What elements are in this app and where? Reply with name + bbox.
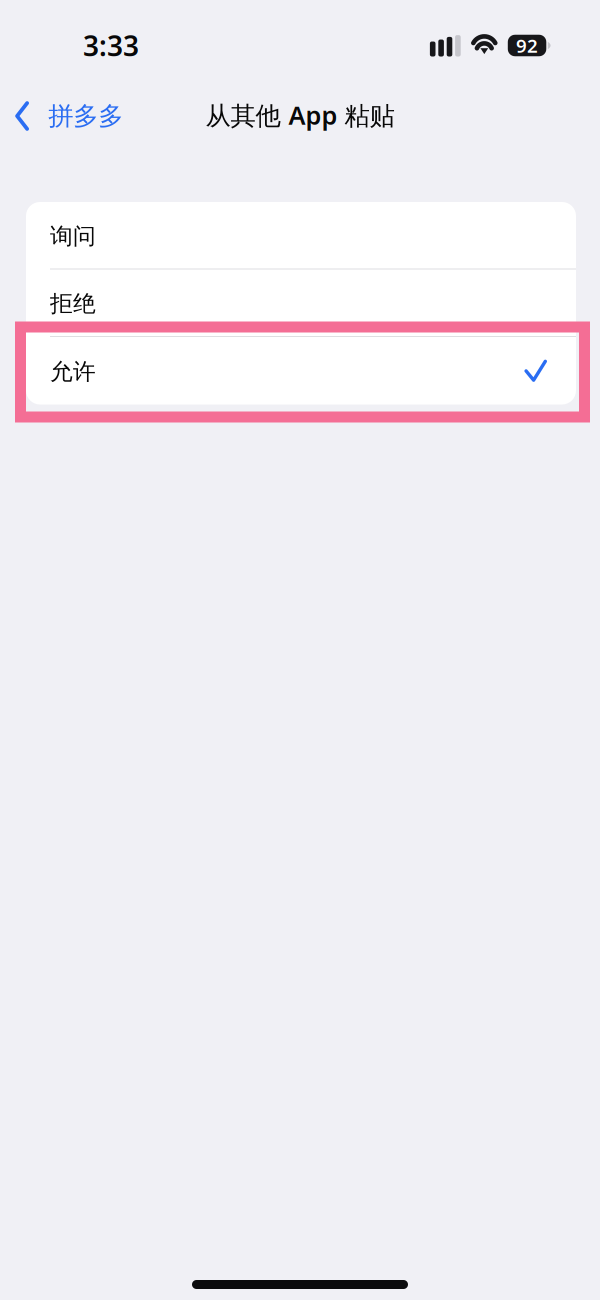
staticText: 拒绝 xyxy=(50,290,96,318)
staticText: 92 xyxy=(516,33,538,58)
button[interactable]: 拒绝 xyxy=(26,269,576,337)
button[interactable]: 拼多多 xyxy=(0,91,137,140)
staticText: 询问 xyxy=(50,222,96,250)
staticText: 允许 xyxy=(50,358,96,386)
button[interactable]: 询问 xyxy=(26,202,576,269)
staticText: 从其他 App 粘贴 xyxy=(205,98,394,132)
staticText: 3:33 xyxy=(83,27,139,64)
staticText: 拼多多 xyxy=(48,100,123,131)
button[interactable]: 允许 xyxy=(26,337,576,404)
